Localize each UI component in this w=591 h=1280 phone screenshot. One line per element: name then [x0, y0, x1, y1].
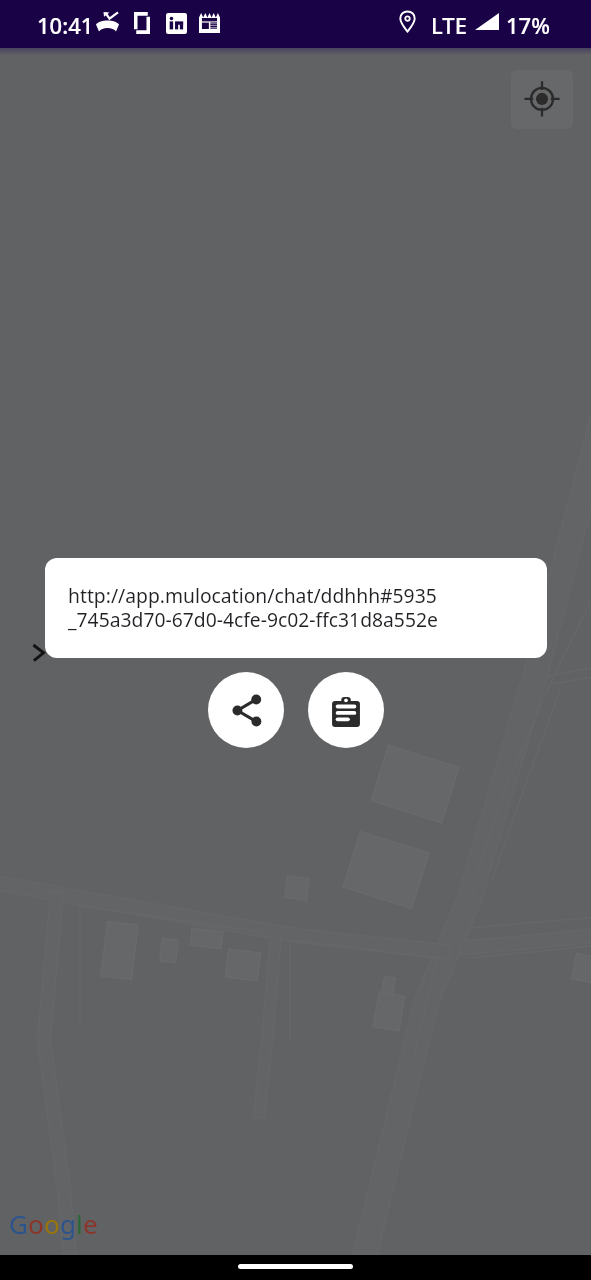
button[interactable]: Share — [208, 672, 284, 748]
staticText: LTE — [431, 10, 467, 40]
button[interactable]: Expand — [26, 636, 52, 666]
staticText: 17% — [506, 10, 550, 40]
staticText: o — [28, 1206, 44, 1241]
button[interactable]: Copy to clipboard — [308, 672, 384, 748]
staticText: o — [44, 1206, 60, 1241]
button[interactable]: http://app.mulocation/chat/ddhhh#5935 _7… — [45, 558, 547, 658]
staticText: l — [76, 1206, 83, 1241]
staticText: G — [9, 1206, 28, 1241]
staticText: g — [60, 1206, 76, 1241]
staticText: e — [83, 1206, 98, 1241]
staticText: 10:41 — [37, 10, 94, 40]
staticText: http://app.mulocation/chat/ddhhh#5935 _7… — [68, 582, 438, 632]
button[interactable]: My location — [511, 70, 573, 129]
